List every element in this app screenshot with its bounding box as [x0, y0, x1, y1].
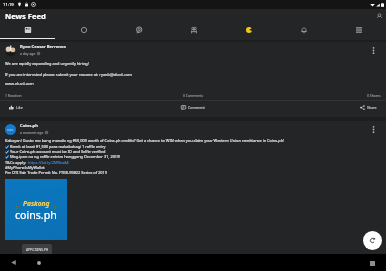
staticText: APP.COINS.PH [26, 247, 49, 252]
button[interactable]: Like [0, 101, 128, 117]
staticText: 1 Reaction [5, 93, 22, 97]
staticText: a day ago [20, 51, 36, 56]
staticText: If you are interested please submit your… [5, 72, 132, 77]
button[interactable]: Comment [128, 101, 257, 117]
button[interactable]: Notifications [276, 24, 331, 40]
staticText: Ryan Ceasar Berronos [20, 44, 66, 50]
staticText: 0 Comments [183, 93, 204, 97]
staticText: 0 Shares [367, 93, 381, 97]
staticText: Share [367, 105, 377, 110]
button[interactable]: News Feed [0, 24, 56, 40]
button[interactable]: Groups [166, 24, 221, 40]
button[interactable]: Refresh feed [363, 231, 382, 250]
button[interactable]: Menu [331, 24, 386, 40]
staticText: coins.ph [15, 208, 57, 222]
button[interactable]: Share [257, 101, 386, 117]
staticText: Kabayan! Gusto mo bang manalo ng ₱50,000… [5, 138, 285, 143]
button[interactable]: Recent apps [366, 257, 378, 269]
staticText: www.eluvii.com [5, 81, 34, 86]
button[interactable]: Paskong [5, 179, 67, 240]
button[interactable]: Watch [56, 24, 111, 40]
staticText: coins [7, 128, 14, 132]
staticText: Remit at least ₱1,500 para makabahagi 1 … [10, 144, 106, 149]
staticText: Coins.ph [20, 123, 38, 129]
staticText: Like [16, 105, 23, 110]
staticText: Your Coins.ph account must be ID and Sel… [10, 149, 106, 154]
button[interactable]: Gaming [221, 24, 276, 40]
staticText: Comment [188, 105, 205, 110]
staticText: a moment ago [20, 130, 44, 135]
button[interactable]: APP.COINS.PH [22, 244, 52, 254]
staticText: Per DTI Fair Trade Permit No. FTEB-99822… [5, 170, 107, 175]
staticText: #MyPhoneIsMyWallet [5, 165, 45, 170]
button[interactable]: Back [7, 256, 19, 268]
staticText: Mag-ipon na ng raffle entries hanggang D… [10, 154, 121, 159]
staticText: https://bit.ly/2MRtwAE [28, 160, 69, 165]
staticText: T&Cs apply: [5, 160, 28, 165]
staticText: 11:19 [3, 2, 14, 8]
staticText: News Feed [5, 11, 46, 21]
button[interactable]: Your profile [375, 12, 384, 21]
button[interactable]: More options for this post [368, 124, 378, 134]
staticText: Paskong [23, 199, 50, 208]
button[interactable]: Marketplace [111, 24, 166, 40]
staticText: We are rapidly expanding and urgently hi… [5, 61, 89, 66]
button[interactable]: Home [33, 257, 45, 269]
button[interactable]: More options for this post [368, 45, 378, 55]
